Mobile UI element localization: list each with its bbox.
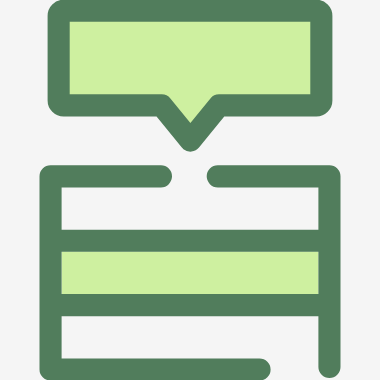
- button[interactable]: Comment on table icon: [0, 0, 380, 380]
